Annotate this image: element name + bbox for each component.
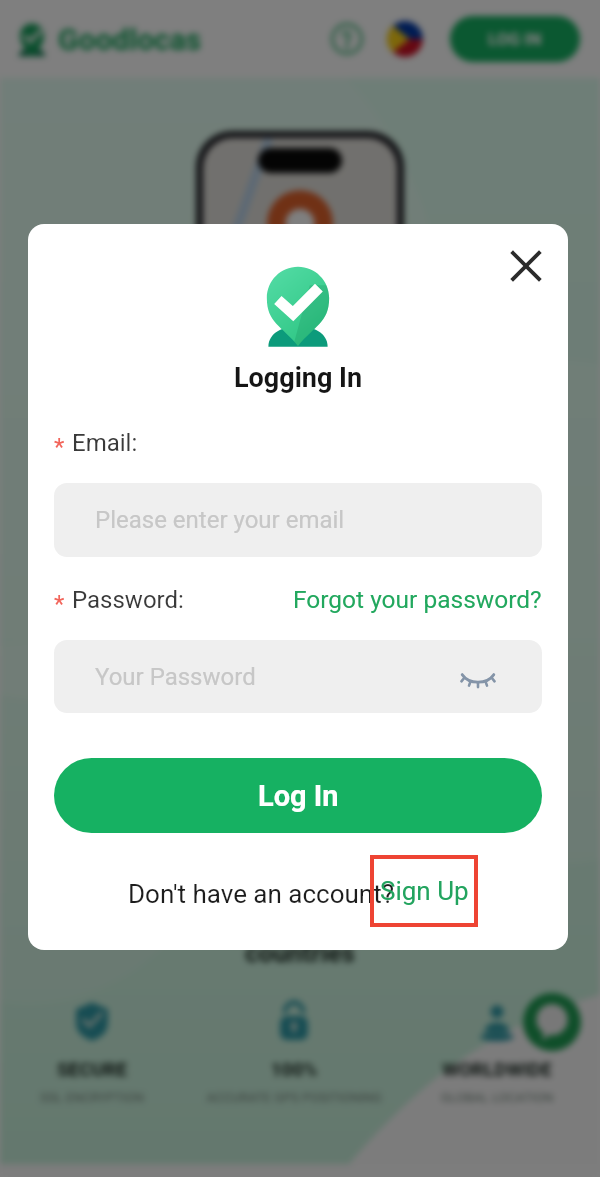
- button[interactable]: Close: [502, 242, 550, 290]
- staticText: GLOBAL LOCATION: [347, 1090, 600, 1105]
- button[interactable]: Chat: [523, 993, 581, 1051]
- staticText: 100%: [144, 1058, 444, 1080]
- button[interactable]: Forgot your password?: [293, 585, 542, 614]
- staticText: Logging In: [234, 362, 363, 394]
- staticText: countries: [245, 938, 355, 968]
- staticText: Your Password: [95, 663, 256, 691]
- button[interactable]: LOG IN: [450, 16, 580, 62]
- staticText: SECURE: [0, 1058, 242, 1080]
- staticText: Email:: [72, 429, 138, 457]
- staticText: Please enter your email: [95, 506, 345, 534]
- staticText: Password:: [72, 586, 184, 614]
- staticText: *: [54, 590, 65, 618]
- button[interactable]: Please enter your email: [54, 483, 542, 557]
- staticText: ACCURATE GPS POSITIONING: [144, 1090, 444, 1105]
- button[interactable]: Your Password: [54, 640, 542, 713]
- staticText: Goodlocas: [58, 22, 202, 57]
- staticText: SSL ENCRYPTION: [0, 1090, 242, 1105]
- button[interactable]: Language: [387, 21, 423, 57]
- staticText: Don't have an account?: [128, 879, 394, 909]
- staticText: WORLDWIDE: [347, 1058, 600, 1080]
- button[interactable]: Show password: [456, 655, 500, 699]
- button[interactable]: Log In: [54, 758, 542, 833]
- button[interactable]: Sign Up: [370, 855, 478, 927]
- staticText: Log In: [258, 779, 339, 813]
- staticText: Forgot your password?: [293, 585, 542, 614]
- button[interactable]: Help: [331, 23, 363, 55]
- staticText: *: [54, 433, 65, 461]
- staticText: Sign Up: [380, 876, 469, 906]
- staticText: LOG IN: [488, 29, 542, 49]
